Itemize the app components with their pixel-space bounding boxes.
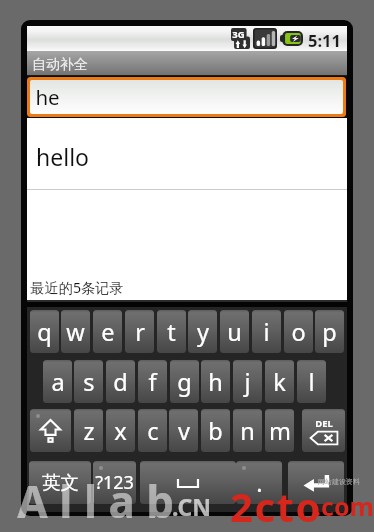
staticText: 2cto <box>230 479 322 532</box>
staticText: o <box>291 316 306 348</box>
button[interactable]: l <box>297 360 326 403</box>
staticText: 自动补全 <box>32 56 88 74</box>
staticText: w <box>66 316 85 348</box>
staticText: 3G <box>232 28 245 41</box>
button[interactable]: h <box>201 360 230 403</box>
staticText: f <box>148 366 157 398</box>
button[interactable]: 英文 <box>29 461 91 504</box>
button[interactable]: m <box>265 409 294 452</box>
staticText: c <box>147 415 159 447</box>
staticText: r <box>135 316 145 348</box>
staticText: l <box>308 366 315 398</box>
staticText: Allab <box>17 471 186 531</box>
button[interactable]: o <box>284 310 313 353</box>
button[interactable]: p <box>315 310 344 353</box>
button[interactable]: Shift <box>30 409 71 452</box>
button[interactable]: c <box>138 409 167 452</box>
staticText: y <box>197 316 209 348</box>
staticText: .com <box>314 489 374 523</box>
staticText: t <box>167 316 176 348</box>
button[interactable]: Space <box>140 461 236 504</box>
button[interactable]: b <box>201 409 230 452</box>
button[interactable]: k <box>265 360 294 403</box>
button[interactable]: Enter <box>288 461 344 504</box>
staticText: 网站建设资料 <box>318 477 360 486</box>
staticText: x <box>114 415 127 447</box>
button[interactable]: ?123 <box>93 461 136 504</box>
staticText: u <box>227 316 242 348</box>
button[interactable]: n <box>233 409 262 452</box>
button[interactable]: i <box>252 310 281 353</box>
staticText: k <box>273 366 286 398</box>
staticText: .CN <box>172 491 211 522</box>
button[interactable]: s <box>74 360 103 403</box>
button[interactable]: v <box>169 409 198 452</box>
button[interactable]: r <box>125 310 154 353</box>
staticText: a <box>51 366 65 398</box>
button[interactable]: x <box>106 409 135 452</box>
button[interactable]: q <box>30 310 59 353</box>
staticText: b <box>208 415 223 447</box>
button[interactable]: g <box>170 360 199 403</box>
staticText: s <box>83 366 95 398</box>
button[interactable]: d <box>106 360 135 403</box>
button[interactable]: f <box>138 360 167 403</box>
button[interactable]: j <box>233 360 262 403</box>
button[interactable]: z <box>74 409 103 452</box>
staticText: d <box>113 366 128 398</box>
staticText: q <box>37 316 52 348</box>
staticText: 5:11 <box>308 29 341 51</box>
staticText: . <box>256 467 263 499</box>
staticText: i <box>263 316 270 348</box>
button[interactable]: hello <box>27 118 347 189</box>
staticText: v <box>178 415 190 447</box>
staticText: p <box>322 316 337 348</box>
button[interactable]: a <box>43 360 72 403</box>
staticText: he <box>35 83 60 111</box>
staticText: g <box>177 366 192 398</box>
button[interactable]: w <box>61 310 90 353</box>
staticText: hello <box>36 141 89 172</box>
button[interactable]: u <box>220 310 249 353</box>
button[interactable]: Delete <box>302 409 345 452</box>
button[interactable]: t <box>157 310 186 353</box>
button[interactable]: y <box>188 310 217 353</box>
staticText: 英文 <box>42 471 79 494</box>
button[interactable]: he <box>30 80 343 114</box>
staticText: j <box>244 366 251 398</box>
staticText: 最近的5条记录 <box>30 278 124 297</box>
staticText: n <box>240 415 255 447</box>
staticText: e <box>101 316 115 348</box>
staticText: ?123 <box>95 470 134 495</box>
button[interactable]: e <box>93 310 122 353</box>
staticText: DEL <box>315 417 333 430</box>
staticText: m <box>269 415 291 447</box>
staticText: z <box>83 415 95 447</box>
button[interactable]: . <box>236 461 282 504</box>
staticText: h <box>208 366 223 398</box>
